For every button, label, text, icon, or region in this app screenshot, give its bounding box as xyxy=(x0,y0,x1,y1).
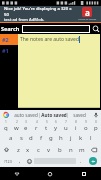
staticText: t xyxy=(45,124,48,132)
staticText: e xyxy=(24,124,28,132)
staticText: Auto saved xyxy=(41,112,67,118)
staticText: 5 xyxy=(46,120,48,124)
button[interactable]: z xyxy=(13,144,23,155)
staticText: 1 xyxy=(5,120,7,124)
button[interactable]: 3 xyxy=(21,120,31,132)
button[interactable]: Recent apps xyxy=(67,167,101,180)
staticText: AdMob by Google xyxy=(78,18,97,21)
button[interactable]: 6 xyxy=(51,120,61,132)
staticText: c xyxy=(37,146,40,154)
button[interactable]: ?123 xyxy=(0,156,15,166)
staticText: w xyxy=(14,124,19,132)
staticText: f xyxy=(40,134,43,142)
button[interactable]: c xyxy=(33,144,43,155)
staticText: 7 xyxy=(65,120,67,124)
button[interactable]: Google search xyxy=(0,110,12,120)
staticText: 4 xyxy=(36,120,38,124)
staticText: , xyxy=(19,158,21,165)
staticText: o xyxy=(84,124,88,132)
button[interactable]: b xyxy=(54,144,65,155)
button[interactable]: Voice input xyxy=(91,110,101,120)
button[interactable]: Emoji xyxy=(24,156,34,166)
staticText: x xyxy=(26,146,30,154)
staticText: 2 xyxy=(16,120,18,124)
button[interactable]: Search notes xyxy=(22,25,90,33)
button[interactable]: m xyxy=(76,144,87,155)
button[interactable]: Period xyxy=(76,156,85,166)
button[interactable]: h xyxy=(56,132,66,144)
button[interactable]: 1 xyxy=(0,120,11,132)
staticText: test ad from AdMob. xyxy=(4,17,45,22)
staticText: p xyxy=(94,124,98,132)
staticText: The notes are auto saved xyxy=(20,36,79,43)
button[interactable]: Backspace xyxy=(87,144,101,155)
staticText: s xyxy=(20,134,23,142)
button[interactable]: l xyxy=(86,132,96,144)
staticText: r xyxy=(35,124,38,132)
button[interactable]: #1 xyxy=(0,45,18,56)
button[interactable]: The notes are auto saved xyxy=(18,34,100,108)
button[interactable]: k xyxy=(76,132,86,144)
button[interactable]: a xyxy=(5,132,16,144)
button[interactable]: auto saved xyxy=(12,110,39,120)
staticText: Search xyxy=(1,25,20,32)
button[interactable]: 5 xyxy=(41,120,51,132)
staticText: 0 xyxy=(95,120,97,124)
button[interactable]: v xyxy=(43,144,54,155)
staticText: saved xyxy=(73,112,86,118)
staticText: 6 xyxy=(55,120,57,124)
button[interactable]: Comma xyxy=(15,156,24,166)
button[interactable]: d xyxy=(26,132,36,144)
button[interactable]: g xyxy=(46,132,56,144)
button[interactable]: 2 xyxy=(11,120,21,132)
staticText: 8 xyxy=(75,120,77,124)
button[interactable]: j xyxy=(66,132,76,144)
staticText: a xyxy=(85,7,90,17)
staticText: n xyxy=(69,146,73,154)
staticText: y xyxy=(54,124,58,132)
button[interactable]: Back xyxy=(0,167,33,180)
button[interactable]: f xyxy=(36,132,46,144)
staticText: g xyxy=(49,134,53,142)
staticText: m xyxy=(79,146,85,154)
staticText: #2 xyxy=(2,36,9,43)
staticText: b xyxy=(58,146,62,154)
button[interactable]: Enter xyxy=(85,156,101,166)
staticText: . xyxy=(80,158,82,165)
staticText: d xyxy=(29,134,33,142)
staticText: v xyxy=(47,146,51,154)
staticText: i xyxy=(75,124,77,132)
button[interactable]: Shift xyxy=(0,144,13,155)
staticText: Nice job! You're displaying a 320 x 50 xyxy=(4,6,73,17)
staticText: a xyxy=(9,134,13,142)
button[interactable]: Home xyxy=(33,167,67,180)
staticText: u xyxy=(64,124,68,132)
button[interactable]: n xyxy=(65,144,76,155)
button[interactable]: 8 xyxy=(71,120,81,132)
staticText: q xyxy=(4,124,8,132)
staticText: auto saved xyxy=(14,112,38,118)
staticText: h xyxy=(59,134,63,142)
staticText: l xyxy=(90,134,92,142)
staticText: #1 xyxy=(2,47,9,54)
staticText: j xyxy=(70,134,72,142)
button[interactable]: x xyxy=(23,144,33,155)
button[interactable]: 0 xyxy=(91,120,101,132)
button[interactable]: 9 xyxy=(81,120,91,132)
button[interactable]: Auto saved xyxy=(40,110,67,120)
button[interactable]: Search xyxy=(90,23,101,34)
button[interactable]: saved xyxy=(68,110,91,120)
staticText: k xyxy=(79,134,83,142)
staticText: ?123 xyxy=(4,159,12,164)
staticText: 9 xyxy=(85,120,87,124)
button[interactable]: Advertisement xyxy=(0,6,101,22)
staticText: 3 xyxy=(25,120,27,124)
button[interactable]: s xyxy=(16,132,26,144)
button[interactable]: #2 xyxy=(0,34,18,45)
staticText: z xyxy=(17,146,20,154)
button[interactable]: 4 xyxy=(31,120,41,132)
button[interactable]: 7 xyxy=(61,120,71,132)
